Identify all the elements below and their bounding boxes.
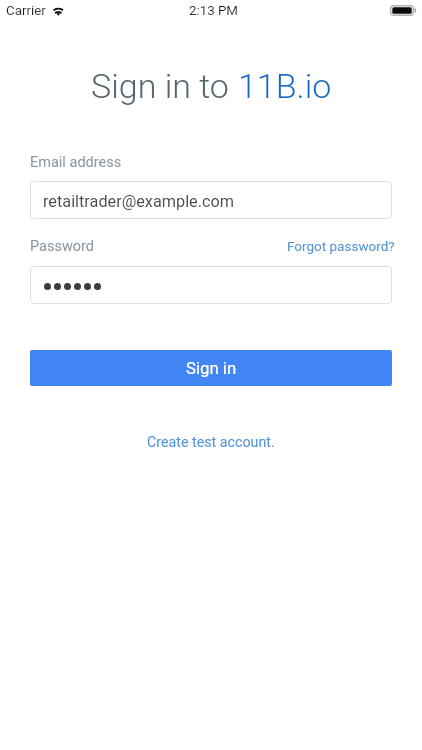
button[interactable]: retailtrader@example.com: [30, 181, 392, 219]
other: Wi-Fi signal: [50, 4, 67, 16]
button[interactable]: [30, 266, 392, 304]
staticText: Carrier: [6, 3, 46, 19]
staticText: Forgot password?: [287, 238, 395, 254]
staticText: Sign in: [186, 358, 237, 378]
button[interactable]: Forgot password?: [279, 230, 403, 262]
staticText: Sign in to: [91, 66, 238, 106]
other: Battery full: [390, 5, 416, 16]
staticText: Create test account.: [147, 434, 275, 451]
staticText: Email address: [30, 154, 122, 171]
button[interactable]: Sign in: [30, 350, 392, 386]
staticText: 11B.io: [238, 66, 332, 106]
staticText: retailtrader@example.com: [43, 192, 235, 211]
staticText: 2:13 PM: [189, 3, 238, 19]
button[interactable]: Create test account.: [133, 424, 289, 461]
staticText: Password: [30, 238, 95, 255]
